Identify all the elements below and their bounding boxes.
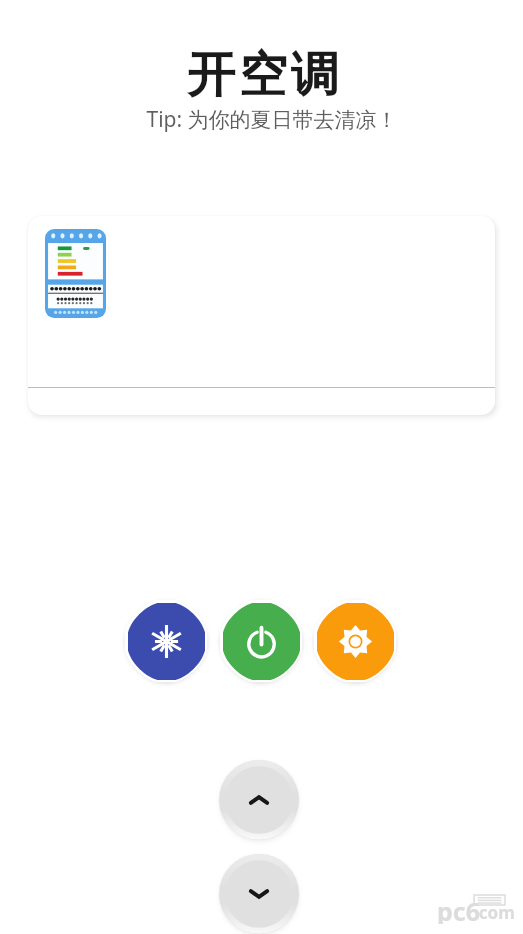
- button[interactable]: Heat mode: [313, 599, 397, 683]
- staticText: 开空调: [185, 45, 341, 105]
- button[interactable]: [28, 216, 495, 415]
- button[interactable]: Cool mode: [124, 599, 208, 683]
- button[interactable]: Decrease temperature: [219, 854, 299, 934]
- staticText: pc6: [437, 894, 481, 924]
- staticText: Tip: 为你的夏日带去清凉！: [146, 105, 398, 134]
- button[interactable]: Increase temperature: [219, 760, 299, 840]
- button[interactable]: Power: [219, 599, 303, 683]
- staticText: .com: [474, 901, 515, 924]
